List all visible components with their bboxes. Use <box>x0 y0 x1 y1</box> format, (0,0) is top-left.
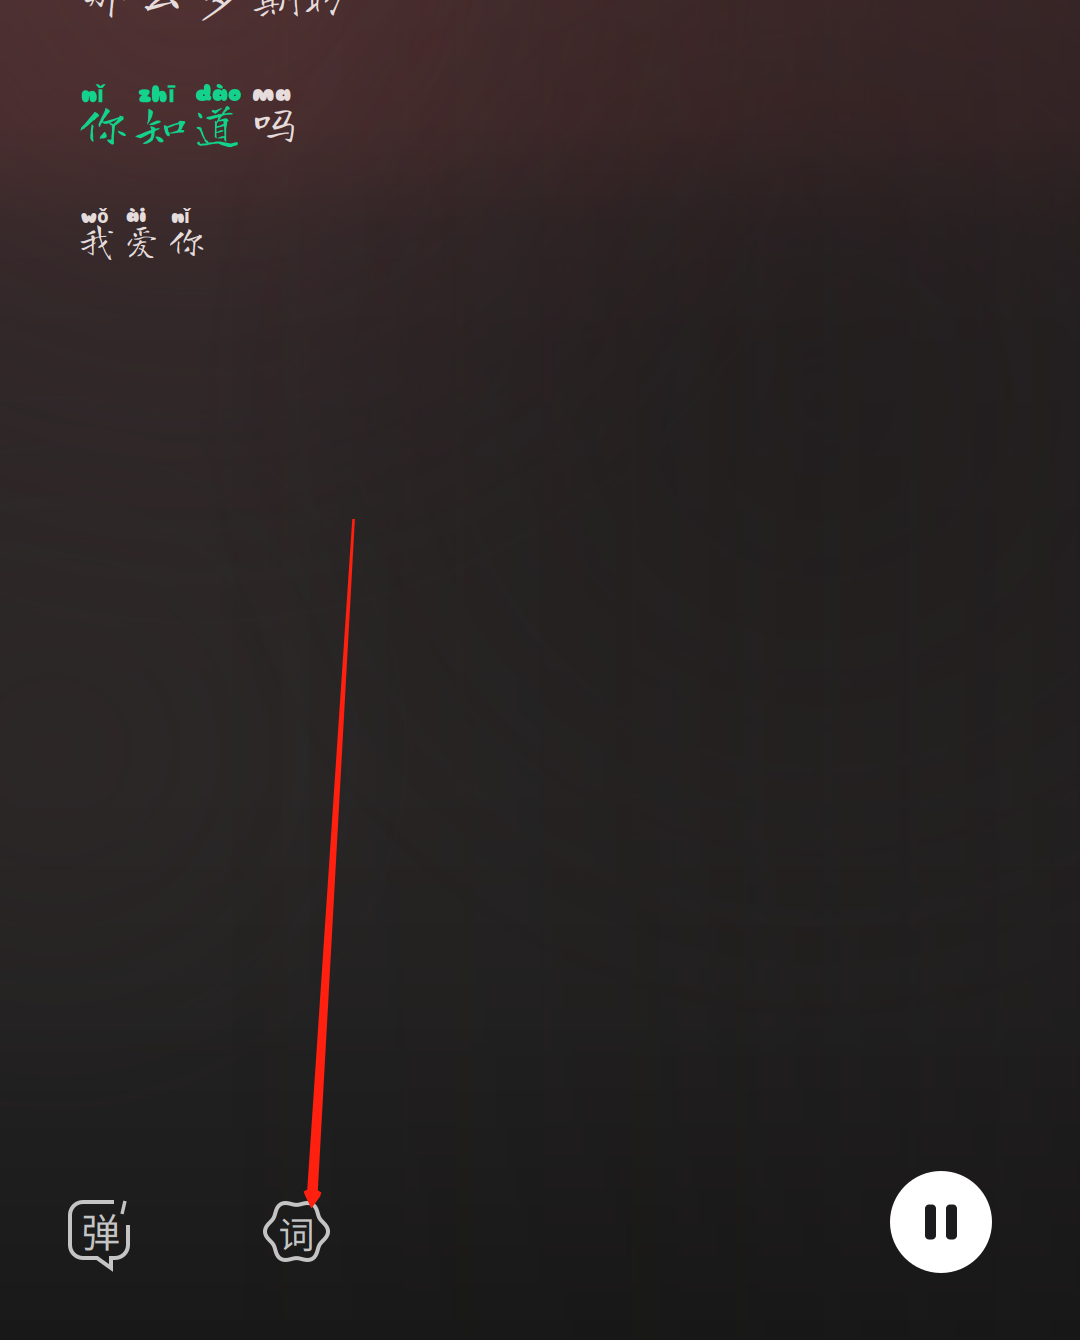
staticText: 你 <box>78 97 129 148</box>
button[interactable]: Pause <box>890 1171 992 1273</box>
staticText: nǐ <box>81 78 104 109</box>
staticText: zhī <box>138 78 175 109</box>
staticText: 弹 <box>81 1202 120 1258</box>
staticText: ài <box>126 204 146 227</box>
staticText: 道 <box>192 97 243 148</box>
staticText: 多 <box>192 0 245 19</box>
staticText: ma <box>252 79 291 107</box>
staticText: 知 <box>135 97 186 148</box>
staticText: 词 <box>278 1206 314 1258</box>
staticText: 那 <box>78 0 131 19</box>
button[interactable]: Lyrics <box>263 1198 330 1265</box>
staticText: 么 <box>135 0 188 19</box>
staticText: 吗 <box>249 97 300 148</box>
staticText: 盼 <box>306 0 359 19</box>
staticText: 期 <box>249 0 302 19</box>
staticText: nǐ <box>171 203 190 228</box>
staticText: dào <box>195 79 241 107</box>
staticText: wǒ <box>81 203 109 228</box>
staticText: 爱 <box>123 221 160 258</box>
staticText: 你 <box>168 221 205 258</box>
staticText: 我 <box>78 221 115 258</box>
button[interactable]: Danmaku comments <box>68 1200 130 1266</box>
